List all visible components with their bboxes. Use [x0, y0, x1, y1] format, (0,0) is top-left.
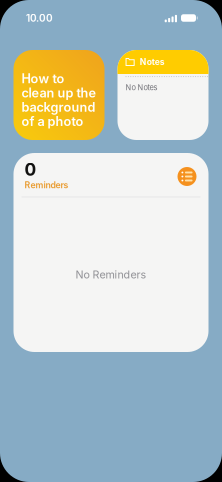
staticText: 0: [24, 159, 36, 180]
button[interactable]: Notes: [117, 50, 208, 140]
staticText: How to: [21, 71, 64, 86]
staticText: background: [21, 99, 95, 115]
staticText: No Notes: [125, 83, 157, 92]
staticText: No Reminders: [75, 268, 146, 281]
button[interactable]: How to: [13, 50, 104, 140]
staticText: clean up the: [21, 85, 95, 100]
button[interactable]: 0: [13, 153, 208, 352]
staticText: of a photo: [21, 114, 83, 129]
staticText: Reminders: [24, 180, 68, 190]
staticText: 10.00: [26, 12, 53, 24]
staticText: Notes: [140, 57, 165, 67]
